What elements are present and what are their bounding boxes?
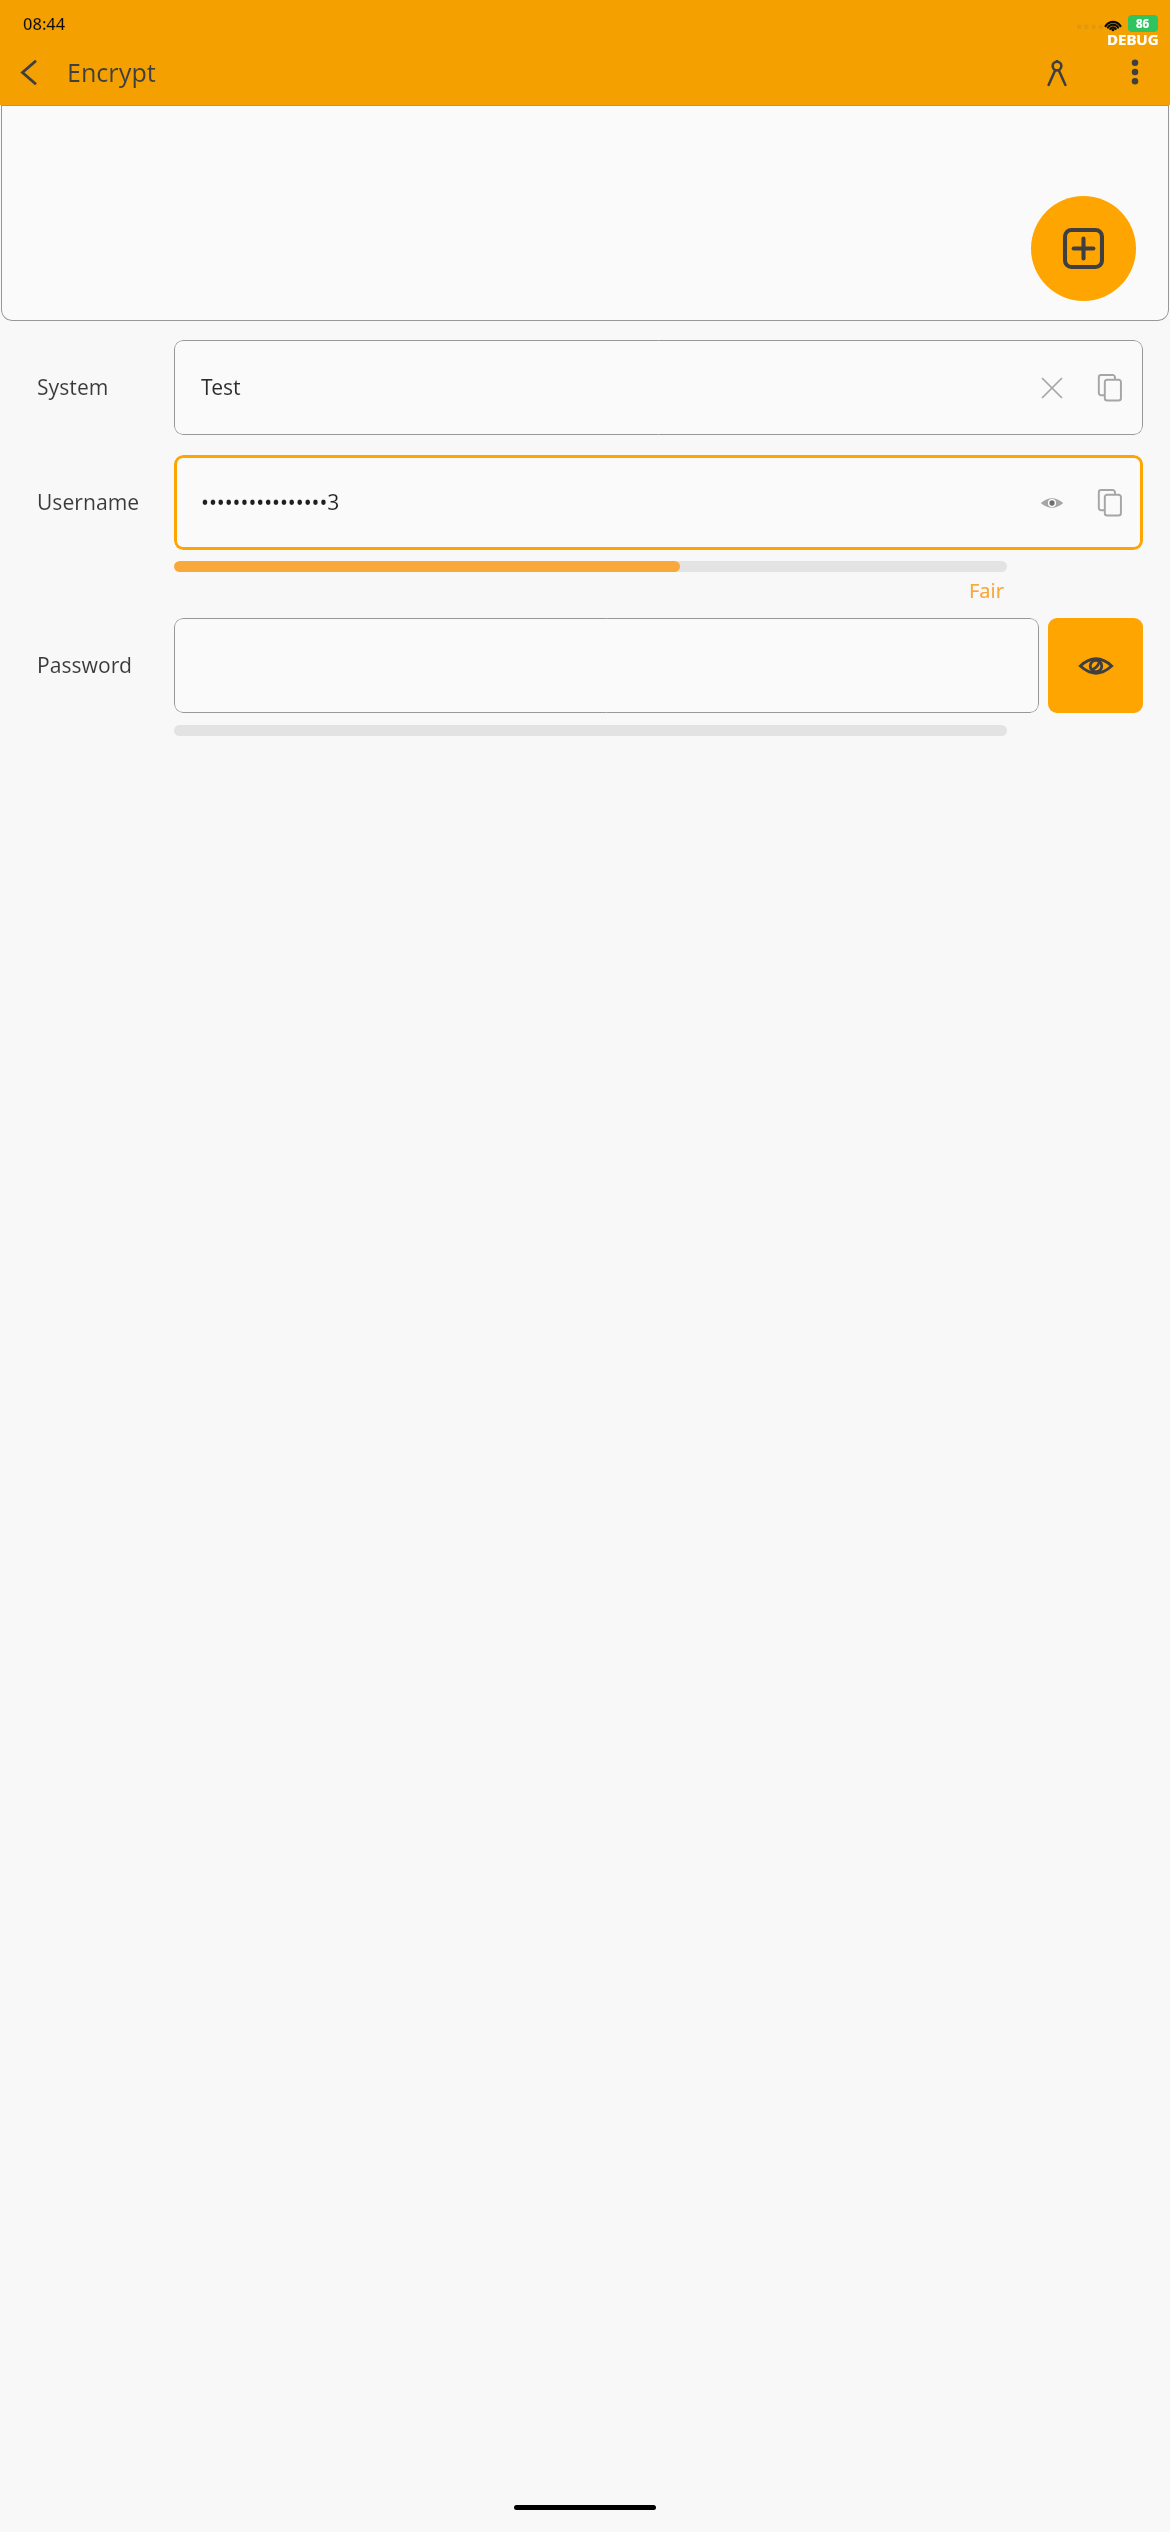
staticText: Test	[201, 373, 1023, 402]
button[interactable]: Add field	[1031, 196, 1136, 301]
button[interactable]: Copy system	[1081, 359, 1139, 417]
staticText: ••••••••••••••••3	[201, 488, 1023, 517]
staticText: Username	[37, 488, 140, 517]
staticText: DEBUG	[1107, 29, 1159, 49]
staticText: 86	[1136, 16, 1150, 32]
button[interactable]: More options	[1106, 43, 1164, 101]
staticText: 08:44	[23, 12, 66, 34]
button[interactable]: Show username	[1023, 474, 1081, 532]
staticText: Password	[37, 651, 132, 680]
staticText: Encrypt	[67, 55, 156, 89]
button[interactable]	[174, 618, 1039, 713]
button[interactable]: Test	[174, 340, 1143, 435]
staticText: System	[37, 373, 109, 402]
button[interactable]: Show password	[1048, 618, 1143, 713]
button[interactable]: Copy username	[1081, 474, 1139, 532]
button[interactable]: Password generator	[1028, 43, 1086, 101]
button[interactable]: Back	[0, 43, 58, 101]
staticText: Fair	[0, 577, 1004, 604]
button[interactable]: ••••••••••••••••3	[174, 455, 1143, 550]
button[interactable]: Clear	[1023, 359, 1081, 417]
